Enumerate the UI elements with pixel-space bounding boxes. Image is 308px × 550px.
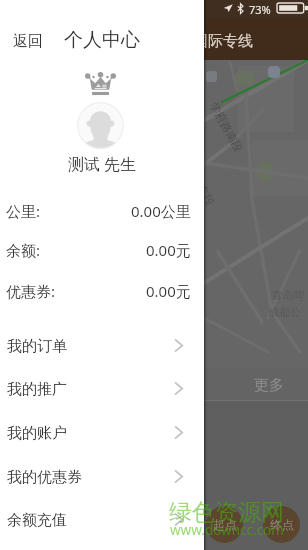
button[interactable]: 我的推广 xyxy=(0,368,204,411)
staticText: 我的订单 xyxy=(7,337,67,356)
button[interactable]: 返回 xyxy=(0,28,56,52)
staticText: 学府路南段 xyxy=(207,100,246,154)
staticText: 国际专线 xyxy=(193,32,253,51)
staticText: 优惠券: xyxy=(6,281,56,301)
staticText: 0.00元 xyxy=(146,240,191,260)
button[interactable]: 我的订单 xyxy=(0,325,204,368)
staticText: 成都公 xyxy=(268,305,301,319)
staticText: 终点 xyxy=(270,517,294,532)
staticText: 青岛啤 xyxy=(272,288,305,302)
staticText: 绿色资源网 xyxy=(169,498,284,527)
button[interactable]: Avatar xyxy=(77,102,124,149)
button[interactable]: 更多 xyxy=(254,376,284,395)
staticText: 0.00公里 xyxy=(131,201,191,221)
staticText: 0.00元 xyxy=(146,281,191,301)
button[interactable]: 我的账户 xyxy=(0,412,204,455)
staticText: 我的推广 xyxy=(7,380,67,399)
button[interactable]: Start point xyxy=(206,506,243,543)
staticText: 返回 xyxy=(13,32,43,48)
staticText: 73% xyxy=(249,2,271,17)
staticText: www.downcc.com xyxy=(170,521,284,539)
button[interactable]: 终点 xyxy=(263,506,300,543)
staticText: 我的账户 xyxy=(7,424,67,443)
staticText: 东段 xyxy=(194,182,217,208)
button[interactable]: 余额充值 xyxy=(0,499,204,542)
staticText: 余额充值 xyxy=(7,511,67,530)
button[interactable]: 我的优惠券 xyxy=(0,456,204,499)
staticText: 我的优惠券 xyxy=(7,468,82,487)
staticText: 起点 xyxy=(213,517,237,532)
staticText: 余额: xyxy=(6,240,41,260)
staticText: 测试 先生 xyxy=(0,153,204,175)
staticText: 个人中心 xyxy=(64,28,140,52)
staticText: 公里: xyxy=(6,201,41,221)
